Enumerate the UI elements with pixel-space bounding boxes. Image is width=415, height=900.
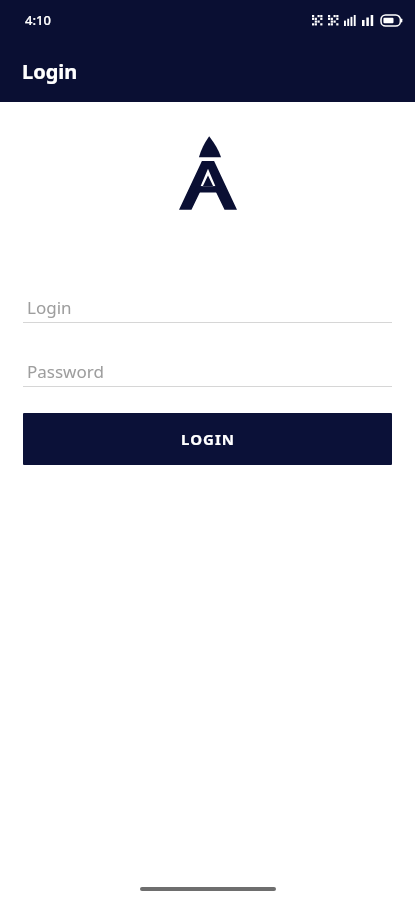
- staticText: Login: [27, 296, 72, 319]
- staticText: 4:10: [25, 11, 51, 29]
- staticText: Password: [27, 360, 104, 383]
- staticText: LOGIN: [181, 429, 235, 449]
- button[interactable]: LOGIN: [23, 413, 392, 465]
- button[interactable]: Password: [23, 356, 392, 387]
- button[interactable]: Login: [23, 292, 392, 323]
- staticText: Login: [22, 58, 78, 85]
